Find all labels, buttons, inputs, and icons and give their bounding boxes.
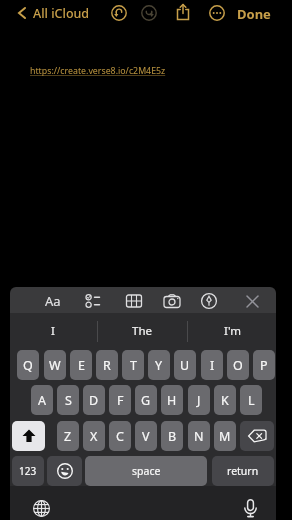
button[interactable] <box>84 292 102 310</box>
button[interactable] <box>14 2 94 24</box>
button[interactable]: Q <box>17 350 39 380</box>
staticText: P <box>260 357 268 374</box>
button[interactable] <box>200 292 218 310</box>
button[interactable]: L <box>240 385 262 415</box>
button[interactable] <box>240 421 274 451</box>
staticText: The <box>132 323 152 339</box>
staticText: space <box>132 464 161 478</box>
button[interactable] <box>12 421 45 451</box>
staticText: G <box>141 392 151 409</box>
button[interactable]: I <box>201 350 223 380</box>
staticText: A <box>38 392 46 409</box>
button[interactable]: E <box>70 350 92 380</box>
button[interactable]: K <box>214 385 236 415</box>
button[interactable]: Done <box>237 5 271 23</box>
button[interactable]: X <box>83 421 105 451</box>
staticText: M <box>219 428 231 445</box>
staticText: I'm <box>224 323 241 339</box>
staticText: O <box>233 357 243 374</box>
staticText: I <box>210 357 215 374</box>
button[interactable]: 123 <box>12 456 44 486</box>
button[interactable]: D <box>83 385 105 415</box>
staticText: T <box>130 357 137 374</box>
button[interactable]: P <box>253 350 275 380</box>
staticText: X <box>90 428 98 445</box>
button[interactable]: V <box>135 421 157 451</box>
button[interactable]: T <box>122 350 144 380</box>
staticText: L <box>248 392 255 409</box>
staticText: D <box>89 392 99 409</box>
button[interactable]: R <box>96 350 118 380</box>
button[interactable]: return <box>212 456 274 486</box>
button[interactable]: space <box>85 456 207 486</box>
button[interactable] <box>47 456 82 486</box>
staticText: return <box>227 464 259 478</box>
staticText: J <box>197 392 201 409</box>
button[interactable]: O <box>227 350 249 380</box>
button[interactable]: H <box>161 385 183 415</box>
button[interactable] <box>174 3 192 21</box>
button[interactable]: The <box>112 317 172 345</box>
button[interactable]: G <box>135 385 157 415</box>
staticText: C <box>116 428 124 445</box>
button[interactable] <box>110 4 128 22</box>
button[interactable] <box>125 292 143 310</box>
staticText: Q <box>23 357 33 374</box>
button[interactable]: A <box>31 385 53 415</box>
button[interactable]: N <box>188 421 210 451</box>
button[interactable]: https://create.verse8.io/c2M4E5z <box>30 65 166 77</box>
staticText: Z <box>64 428 72 445</box>
button[interactable] <box>163 292 181 310</box>
button[interactable] <box>140 4 158 22</box>
staticText: B <box>168 428 177 445</box>
staticText: W <box>49 357 61 374</box>
button[interactable]: B <box>161 421 183 451</box>
staticText: N <box>194 428 204 445</box>
button[interactable] <box>14 5 30 21</box>
button[interactable]: J <box>188 385 210 415</box>
staticText: H <box>167 392 177 409</box>
button[interactable]: Z <box>57 421 79 451</box>
button[interactable]: W <box>44 350 66 380</box>
button[interactable]: Y <box>148 350 170 380</box>
staticText: S <box>65 392 72 409</box>
button[interactable]: Aa <box>45 292 61 310</box>
button[interactable]: U <box>174 350 196 380</box>
button[interactable]: M <box>214 421 236 451</box>
button[interactable] <box>240 498 261 519</box>
staticText: Y <box>155 357 163 374</box>
staticText: V <box>142 428 150 445</box>
button[interactable]: I <box>23 317 83 345</box>
staticText: K <box>221 392 229 409</box>
staticText: 123 <box>19 464 37 478</box>
button[interactable]: C <box>109 421 131 451</box>
button[interactable] <box>245 294 260 309</box>
staticText: R <box>103 357 111 374</box>
button[interactable] <box>208 4 226 22</box>
button[interactable]: F <box>109 385 131 415</box>
button[interactable] <box>33 500 50 517</box>
staticText: E <box>78 357 85 374</box>
staticText: All iCloud <box>33 5 90 22</box>
staticText: I <box>51 323 55 339</box>
staticText: F <box>117 392 124 409</box>
staticText: U <box>180 357 190 374</box>
button[interactable]: S <box>57 385 79 415</box>
button[interactable]: I'm <box>202 317 262 345</box>
